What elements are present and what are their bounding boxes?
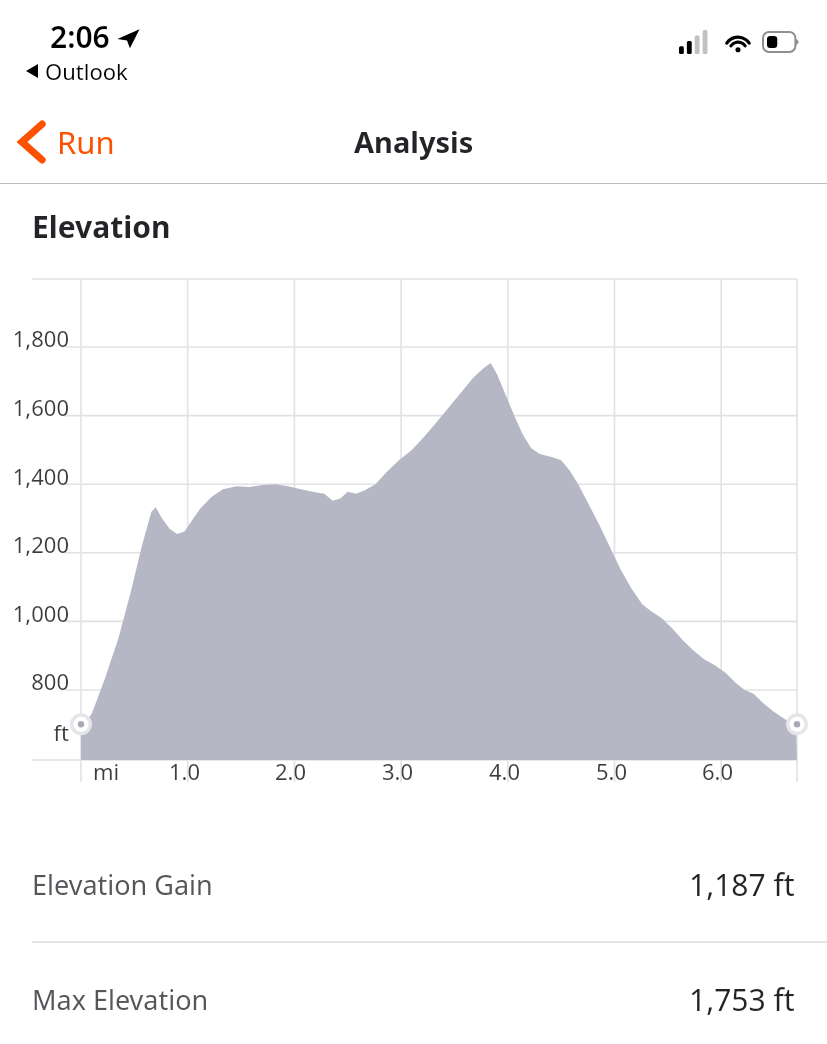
staticText: 1,400 [7, 461, 69, 491]
staticText: Elevation Gain [32, 866, 213, 903]
staticText: 1,200 [7, 529, 69, 559]
staticText: 1,753 ft [689, 979, 795, 1020]
staticText: Run [57, 121, 115, 163]
button[interactable]: Max Elevation [0, 961, 827, 1038]
staticText: 2:06 [50, 16, 110, 57]
button[interactable]: Elevation Gain [0, 846, 827, 923]
staticText: Outlook [45, 56, 128, 86]
staticText: 1.0 [169, 756, 201, 786]
staticText: 2.0 [275, 756, 307, 786]
staticText: 1,800 [7, 323, 69, 353]
staticText: Elevation [32, 206, 171, 247]
staticText: 3.0 [382, 756, 414, 786]
staticText: ft [0, 717, 69, 747]
staticText: 1,187 ft [689, 864, 795, 905]
staticText: Max Elevation [32, 981, 209, 1018]
staticText: Analysis [354, 122, 474, 161]
button[interactable]: Run [0, 113, 131, 171]
staticText: 1,000 [7, 598, 69, 628]
staticText: mi [93, 756, 120, 786]
staticText: 800 [7, 666, 69, 696]
staticText: 6.0 [702, 756, 734, 786]
staticText: 4.0 [489, 756, 521, 786]
staticText: 1,600 [7, 392, 69, 422]
staticText: 5.0 [596, 756, 628, 786]
